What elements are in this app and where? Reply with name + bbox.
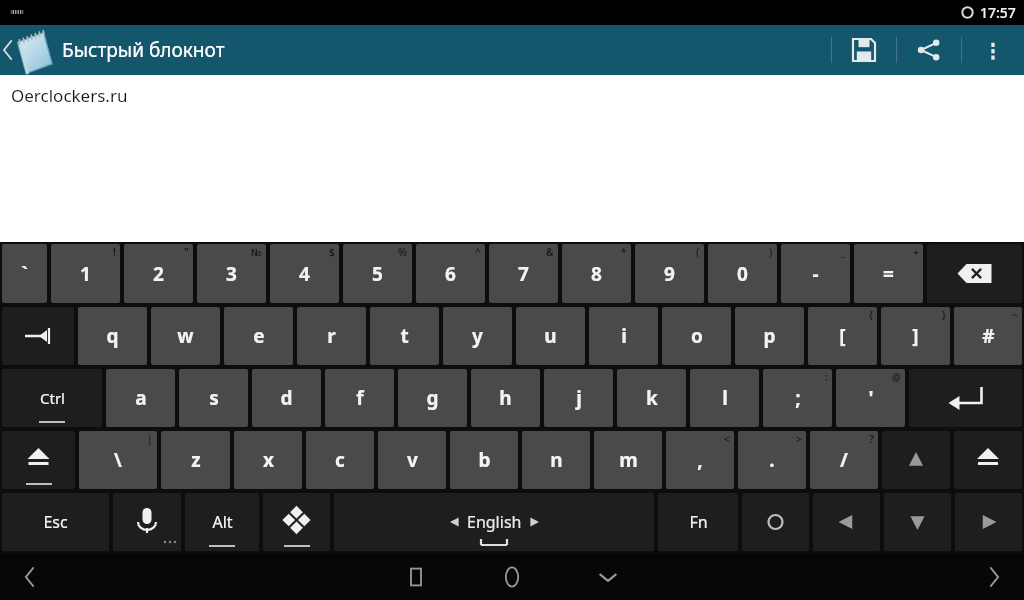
button[interactable]: Voice input — [113, 493, 181, 551]
button[interactable]: y — [443, 307, 512, 365]
button[interactable]: u — [516, 307, 585, 365]
button[interactable]: Share — [897, 25, 961, 75]
button[interactable]: t — [370, 307, 439, 365]
staticText: n — [550, 447, 563, 473]
button[interactable]: i — [589, 307, 658, 365]
button[interactable]: Tab — [2, 307, 74, 365]
button[interactable]: m — [594, 431, 662, 489]
button[interactable]: a — [106, 369, 175, 427]
button[interactable]: q — [78, 307, 147, 365]
staticText: v — [407, 447, 418, 473]
button[interactable]: ` — [2, 244, 47, 303]
button[interactable]: Ctrl — [2, 369, 102, 427]
staticText: & — [546, 245, 554, 259]
button[interactable]: Symbol — [742, 493, 809, 551]
button[interactable]: p — [735, 307, 804, 365]
staticText: : — [825, 370, 828, 384]
staticText: - — [812, 261, 819, 287]
button[interactable]: Forward — [964, 553, 1024, 600]
button[interactable]: Recents — [368, 553, 464, 600]
button[interactable]: = — [854, 244, 923, 303]
button[interactable]: Change keyboard — [263, 493, 330, 551]
button[interactable]: / — [810, 431, 878, 489]
button[interactable]: n — [522, 431, 590, 489]
button[interactable]: Save — [832, 25, 896, 75]
button[interactable]: b — [450, 431, 518, 489]
button[interactable]: g — [398, 369, 467, 427]
button[interactable]: Arrow up — [882, 431, 950, 489]
button[interactable]: 3 — [197, 244, 266, 303]
button[interactable]: . — [738, 431, 806, 489]
button[interactable]: 8 — [562, 244, 631, 303]
button[interactable]: Alt — [185, 493, 259, 551]
button[interactable]: h — [471, 369, 540, 427]
button[interactable]: - — [781, 244, 850, 303]
staticText: = — [883, 261, 894, 287]
button[interactable]: Home — [464, 553, 560, 600]
button[interactable]: Shift — [2, 431, 75, 489]
button[interactable]: Enter — [909, 369, 1022, 427]
button[interactable]: x — [234, 431, 302, 489]
button[interactable]: 0 — [708, 244, 777, 303]
staticText: ! — [113, 245, 116, 259]
button[interactable]: 5 — [343, 244, 412, 303]
button[interactable]: o — [662, 307, 731, 365]
staticText: k — [646, 385, 658, 411]
button[interactable]: d — [252, 369, 321, 427]
button[interactable]: ' — [836, 369, 905, 427]
staticText: % — [398, 245, 408, 259]
button[interactable]: v — [378, 431, 446, 489]
button[interactable]: # — [954, 307, 1022, 365]
button[interactable]: 1 — [51, 244, 120, 303]
button[interactable]: 7 — [489, 244, 558, 303]
staticText: $ — [329, 245, 335, 259]
staticText: j — [576, 385, 582, 411]
button[interactable]: Arrow down — [884, 493, 951, 551]
button[interactable]: ] — [881, 307, 950, 365]
button[interactable]: Shift right — [954, 431, 1022, 489]
button[interactable]: , — [666, 431, 734, 489]
staticText: \ — [114, 447, 122, 473]
staticText: @ — [892, 370, 901, 384]
button[interactable]: 6 — [416, 244, 485, 303]
button[interactable]: Back — [0, 553, 60, 600]
button[interactable]: z — [161, 431, 230, 489]
button[interactable]: Backspace — [927, 244, 1022, 303]
button[interactable]: l — [690, 369, 759, 427]
button[interactable]: Arrow right — [955, 493, 1022, 551]
staticText: } — [942, 308, 946, 322]
button[interactable]: f — [325, 369, 394, 427]
staticText: ] — [912, 323, 919, 349]
button[interactable]: ; — [763, 369, 832, 427]
button[interactable]: Hide keyboard — [560, 553, 656, 600]
button[interactable]: 9 — [635, 244, 704, 303]
button[interactable]: s — [179, 369, 248, 427]
button[interactable]: e — [224, 307, 293, 365]
button[interactable]: w — [151, 307, 220, 365]
staticText: 0 — [737, 261, 748, 287]
button[interactable]: 4 — [270, 244, 339, 303]
button[interactable]: r — [297, 307, 366, 365]
button[interactable]: More options — [962, 25, 1024, 75]
button[interactable]: \ — [79, 431, 157, 489]
staticText: p — [763, 323, 776, 349]
staticText: 3 — [226, 261, 237, 287]
button[interactable]: Space, English — [334, 493, 654, 551]
button[interactable]: Arrow left — [813, 493, 880, 551]
staticText: Alt — [212, 511, 233, 533]
button[interactable]: Esc — [2, 493, 109, 551]
staticText: Ctrl — [40, 388, 65, 408]
button[interactable]: [ — [808, 307, 877, 365]
button[interactable]: k — [617, 369, 686, 427]
button[interactable]: Navigate up — [0, 25, 62, 75]
button[interactable]: j — [544, 369, 613, 427]
button[interactable]: Oerclockers.ru — [0, 75, 1024, 242]
staticText: h — [499, 385, 512, 411]
staticText: ` — [21, 261, 28, 287]
button[interactable]: c — [306, 431, 374, 489]
button[interactable]: Fn — [658, 493, 738, 551]
staticText: ? — [869, 432, 874, 446]
staticText: z — [191, 447, 201, 473]
button[interactable]: 2 — [124, 244, 193, 303]
staticText: > — [796, 432, 802, 446]
